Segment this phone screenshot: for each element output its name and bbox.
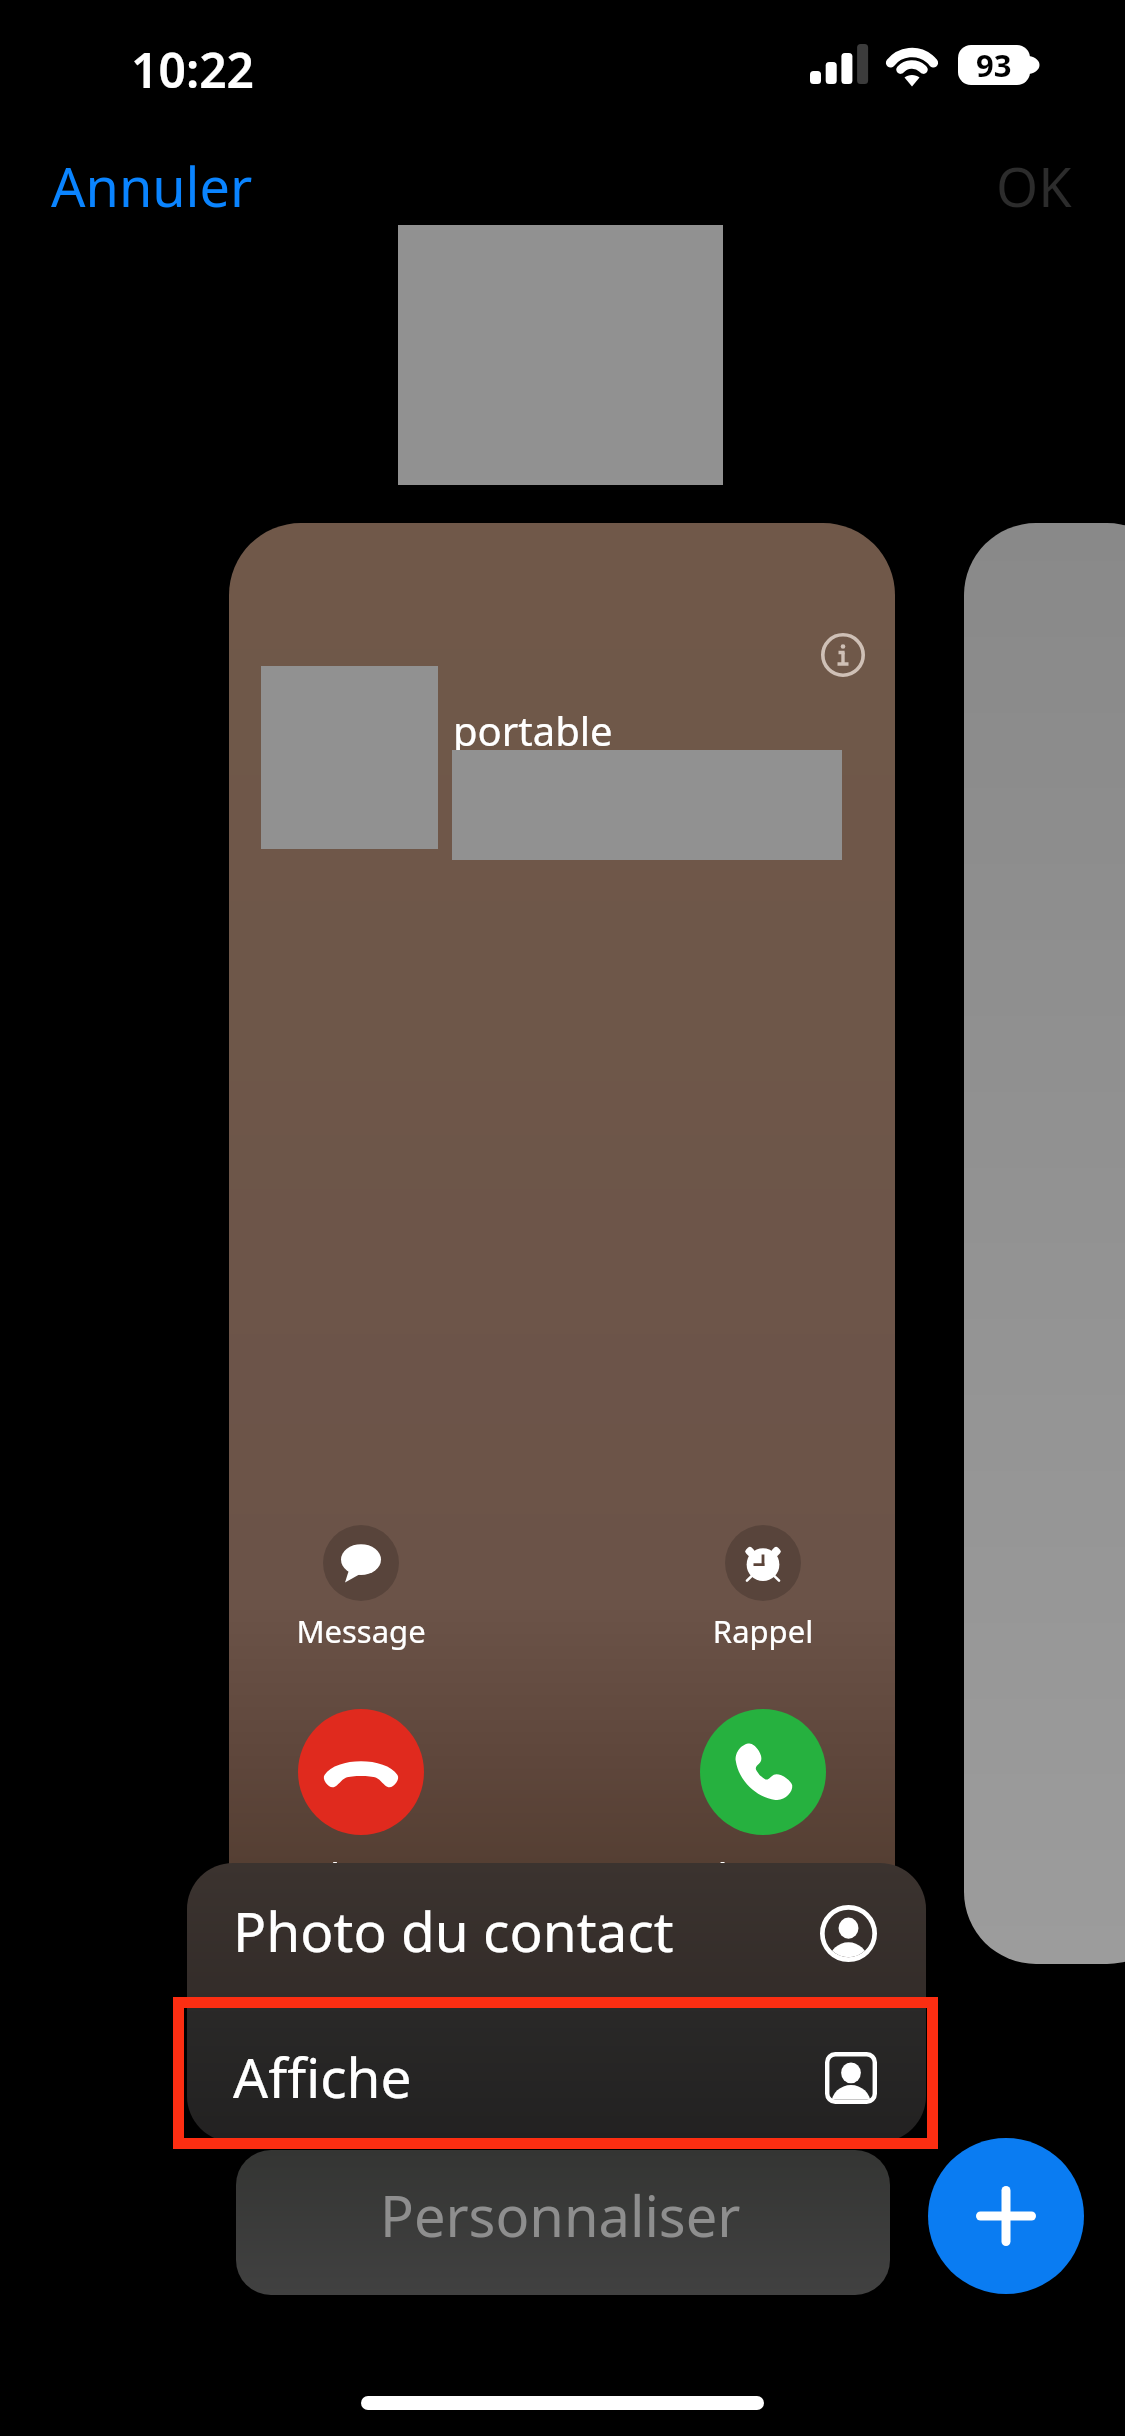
staticText: Répondre [613,1853,895,1895]
staticText: OK [996,149,1072,223]
staticText: Annuler [51,149,253,223]
button[interactable]: Message [323,1525,399,1601]
staticText: Photo du contact [233,1893,674,1968]
staticText: 10:22 [131,37,255,102]
button[interactable]: Affiche [187,2002,926,2142]
button[interactable]: Personnaliser [236,2150,890,2295]
button[interactable]: Annuler [39,141,265,231]
button[interactable]: Add [928,2138,1084,2294]
staticText: portable [453,703,613,757]
button[interactable]: Répondre [700,1709,826,1835]
button[interactable]: OK [984,141,1084,231]
button[interactable]: Info [817,629,869,681]
staticText: Message [229,1610,511,1652]
staticText: Rappel [613,1610,895,1652]
staticText: Personnaliser [380,2177,741,2253]
button[interactable]: Photo du contact [187,1863,926,2002]
staticText: Décliner [229,1853,511,1895]
staticText: Affiche [233,2039,412,2114]
button[interactable]: Décliner [298,1709,424,1835]
staticText: 93 [976,45,1012,84]
button[interactable]: Rappel [725,1525,801,1601]
button[interactable]: Next poster [964,523,1125,1964]
